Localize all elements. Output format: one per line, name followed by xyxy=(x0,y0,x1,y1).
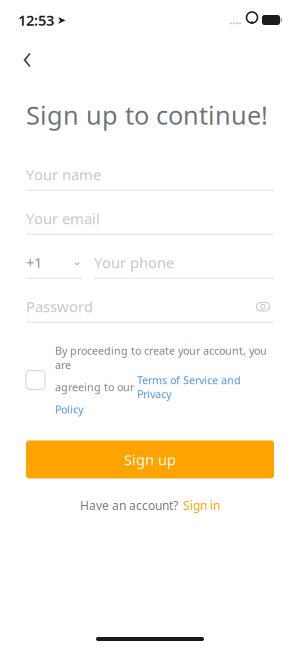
button[interactable]: Sign up xyxy=(26,440,274,478)
staticText: Have an account? xyxy=(80,497,178,513)
staticText: Sign up to continue! xyxy=(26,98,268,132)
button[interactable]: Policy xyxy=(55,402,83,416)
staticText: Your name xyxy=(26,165,101,184)
staticText: Policy xyxy=(55,402,83,416)
button[interactable]: Terms of Service and Privacy xyxy=(137,373,241,401)
staticText: Terms of Service and Privacy xyxy=(137,373,241,401)
button[interactable]: Agree to terms xyxy=(26,371,45,390)
staticText: agreeing to our xyxy=(55,380,137,394)
button[interactable]: Back xyxy=(10,40,44,72)
staticText: ‹ xyxy=(22,33,31,79)
staticText: Sign up xyxy=(124,450,176,469)
staticText: ⌄ xyxy=(72,254,82,268)
staticText: ➤ xyxy=(57,14,66,26)
staticText: 12:53 xyxy=(18,10,54,30)
staticText: +1 xyxy=(26,253,42,272)
button[interactable]: +1 xyxy=(26,248,82,279)
staticText: Your phone xyxy=(94,253,174,272)
button[interactable]: Sign in xyxy=(183,497,220,513)
staticText: Sign in xyxy=(183,497,220,513)
button[interactable]: Show password xyxy=(252,296,274,318)
staticText: .... xyxy=(229,13,241,27)
staticText: Your email xyxy=(26,209,100,228)
staticText: Password xyxy=(26,297,93,316)
staticText: By proceeding to create your account, yo… xyxy=(55,344,267,372)
